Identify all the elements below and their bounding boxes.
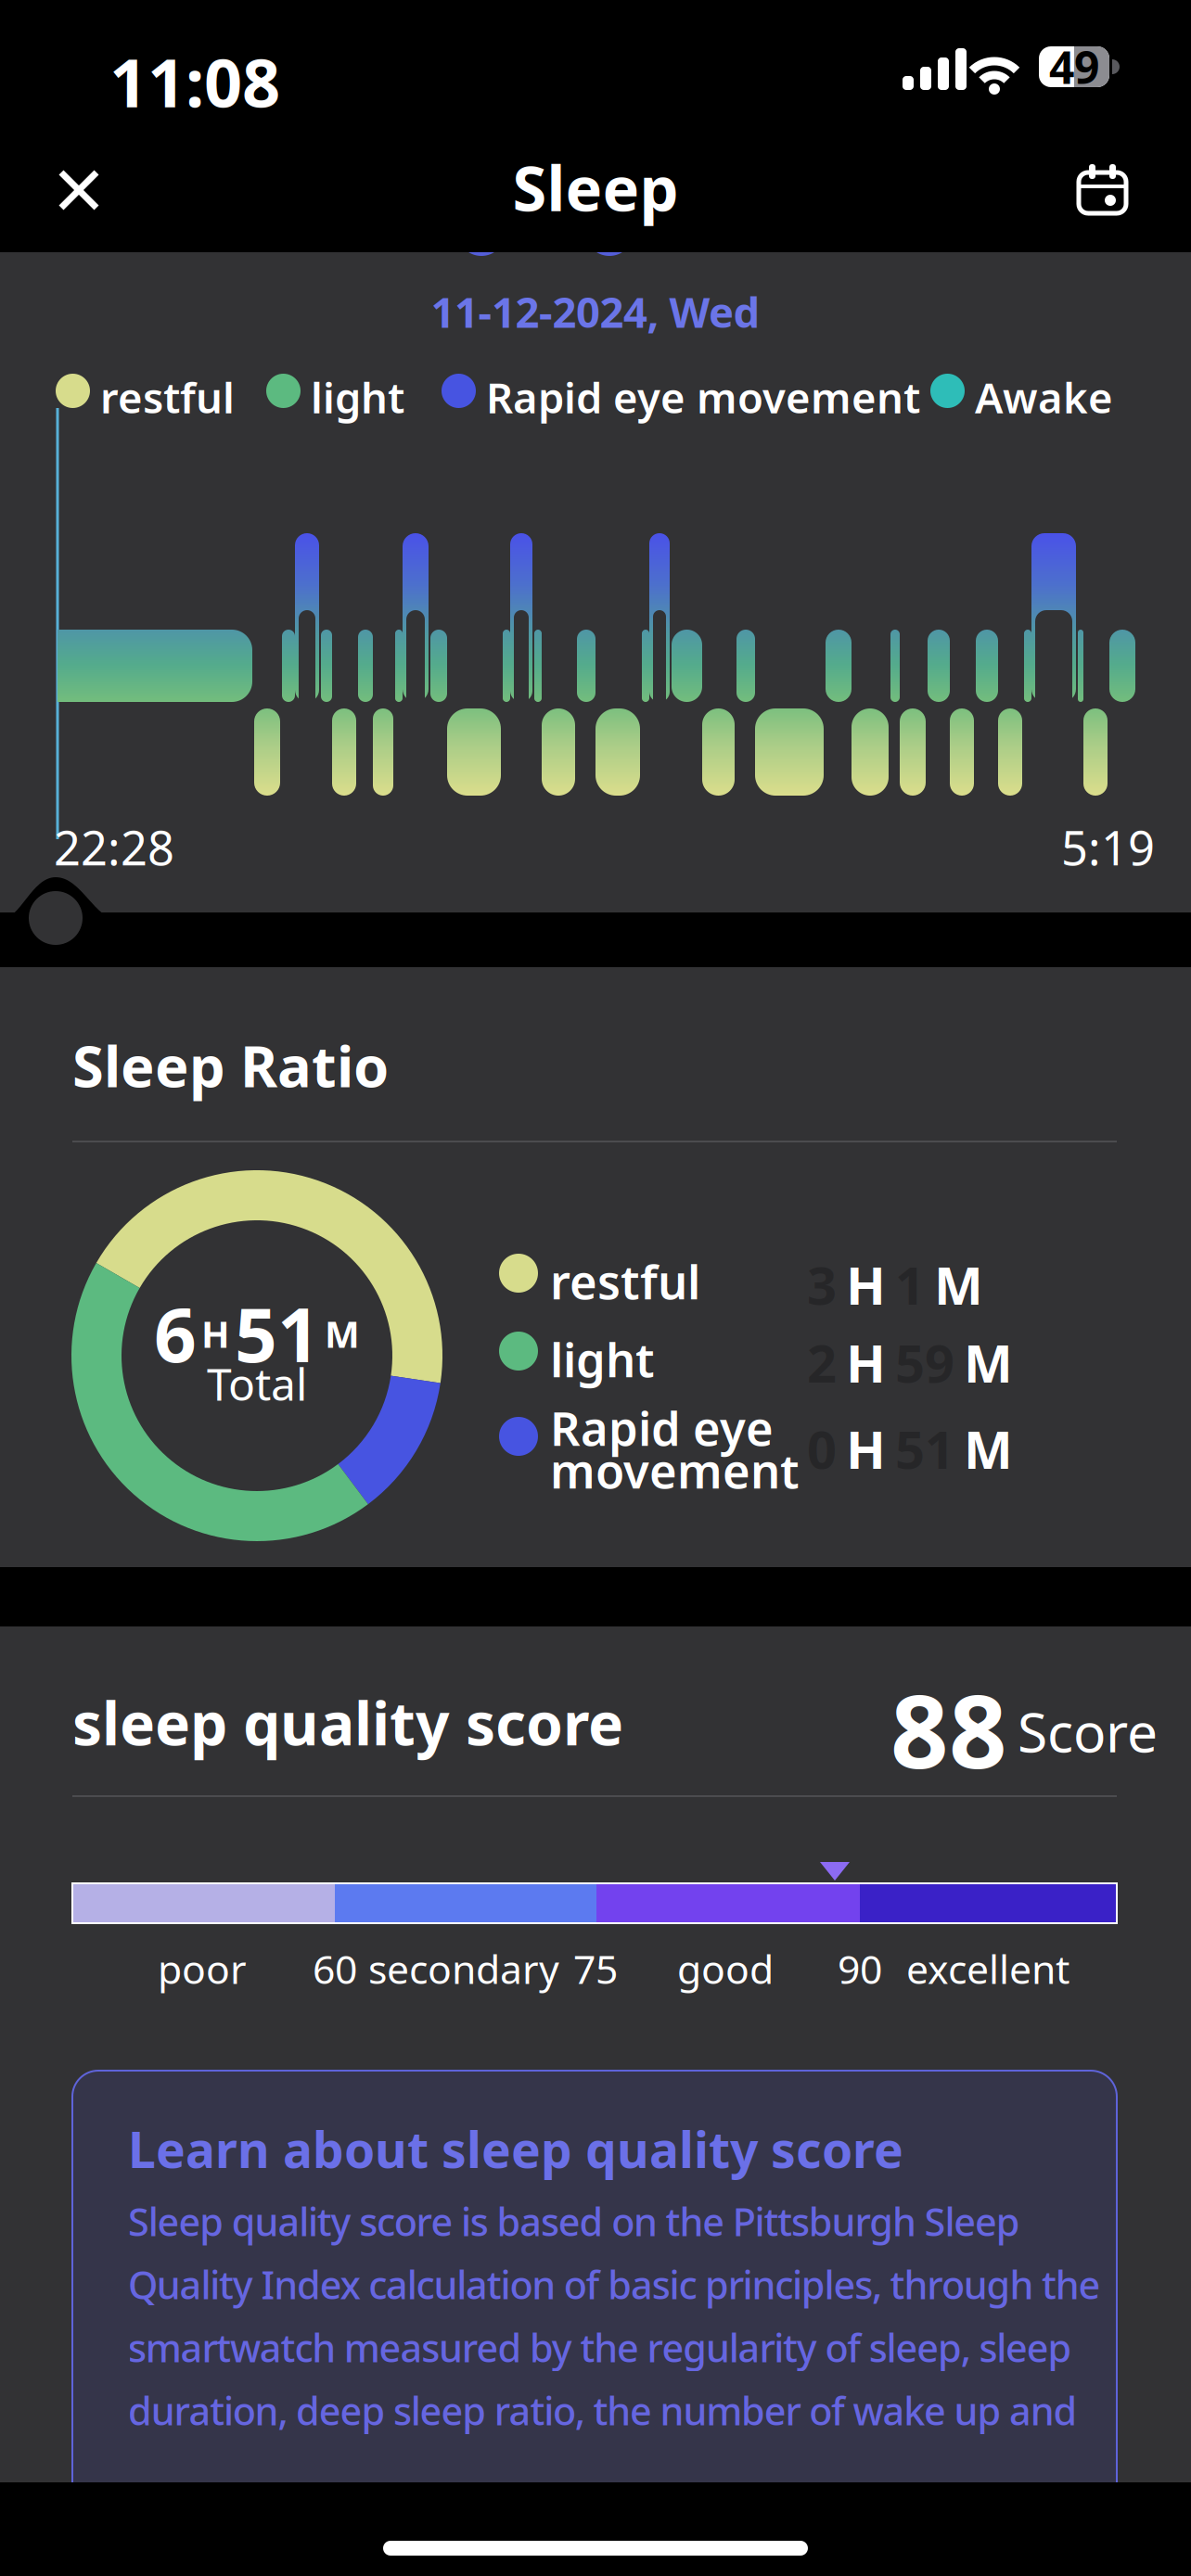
staticText: M [934,1250,983,1319]
staticText: 59 [895,1328,954,1397]
staticText: movement [550,1439,800,1502]
staticText: Awake [975,369,1113,425]
staticText: 51 [895,1414,954,1483]
staticText: H [846,1328,886,1397]
staticText: Sleep quality score is based on the Pitt… [128,2196,1020,2247]
staticText: 49 [1049,37,1099,96]
staticText: duration, deep sleep ratio, the number o… [128,2385,1077,2436]
staticText: M [964,1328,1013,1397]
staticText: Sleep Ratio [72,1027,389,1103]
staticText: Rapid eye movement [486,369,920,425]
staticText: H [846,1414,886,1483]
button[interactable]: Calendar [1065,150,1139,224]
staticText: 11-12-2024, Wed [431,284,760,339]
staticText: 11:08 [109,37,280,126]
staticText: M [325,1309,360,1358]
staticText: light [550,1328,655,1390]
staticText: H [846,1250,886,1319]
staticText: Rapid eye [550,1396,774,1459]
staticText: sleep quality score [72,1683,623,1762]
button[interactable]: Close [42,153,116,227]
staticText: 51 [235,1284,320,1383]
staticText: 3 [807,1250,837,1319]
staticText: 2 [807,1328,837,1397]
staticText: restful [100,369,235,425]
staticText: smartwatch measured by the regularity of… [128,2322,1072,2373]
button[interactable]: Timeline position [26,888,85,948]
staticText: Sleep [512,146,679,228]
staticText: 60 [313,1942,357,1995]
staticText: H [201,1309,230,1358]
staticText: good [677,1942,774,1995]
staticText: Learn about sleep quality score [128,2116,903,2182]
staticText: Total [207,1354,307,1413]
staticText: 1 [895,1250,925,1319]
staticText: secondary [368,1942,559,1995]
staticText: 22:28 [54,816,174,878]
staticText: Quality Index calculation of basic princ… [128,2259,1101,2310]
staticText: Score [1018,1695,1158,1767]
staticText: restful [550,1250,700,1312]
staticText: 90 [838,1942,882,1995]
staticText: 5:19 [1061,816,1155,878]
button[interactable]: Learn about sleep quality score [72,2071,1117,2553]
staticText: poor [158,1942,247,1995]
staticText: 6 [154,1284,197,1383]
staticText: excellent [906,1942,1069,1995]
staticText: 88 [890,1662,1007,1796]
staticText: 0 [807,1414,837,1483]
staticText: 75 [573,1942,618,1995]
staticText: light [311,369,404,425]
staticText: M [964,1414,1013,1483]
